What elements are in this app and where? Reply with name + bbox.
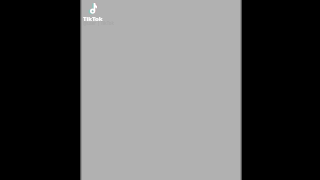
staticText: TikTok: [83, 15, 103, 23]
other: TikTok logo: [90, 3, 106, 19]
staticText: @user | TikTok: [83, 20, 114, 26]
button[interactable]: TikTok logo: [80, 0, 241, 180]
